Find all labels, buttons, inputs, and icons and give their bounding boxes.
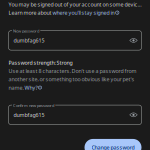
staticText: name.: [8, 84, 24, 91]
staticText: another site, or something too obvious l…: [8, 76, 134, 83]
staticText: Change password: [91, 144, 134, 150]
staticText: New password: [13, 28, 39, 34]
button[interactable]: dumbfag615: [8, 31, 141, 50]
staticText: Use at least 8 characters. Don't use a p…: [8, 67, 136, 74]
staticText: dumbfag615: [13, 37, 44, 44]
button[interactable]: dumbfag615: [8, 105, 141, 125]
staticText: where you'll stay signed in: [52, 9, 114, 16]
staticText: Why?: [24, 84, 37, 91]
button[interactable]: name.: [8, 84, 42, 91]
staticText: dumbfag615: [13, 111, 44, 118]
staticText: Confirm new password: [13, 103, 54, 108]
button[interactable]: Learn more about: [8, 9, 119, 16]
staticText: Password strength: Strong: [8, 59, 72, 66]
staticText: You may be signed out of your account on…: [8, 1, 141, 8]
staticText: Learn more about: [8, 9, 52, 16]
button[interactable]: Change password: [84, 139, 141, 150]
